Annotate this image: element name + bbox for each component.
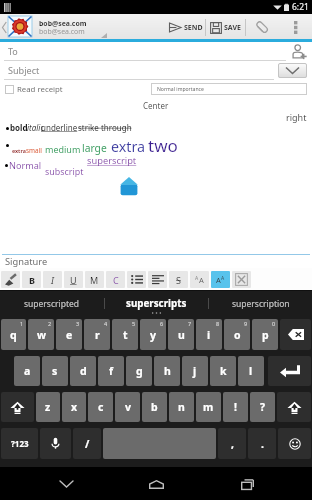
button[interactable]: y — [140, 319, 166, 350]
staticText: A — [199, 275, 204, 285]
button[interactable]: v — [115, 392, 140, 422]
button[interactable]: M — [85, 271, 104, 288]
button[interactable]: a — [14, 356, 40, 386]
button[interactable]: i — [196, 319, 222, 350]
button[interactable]: t — [112, 319, 138, 350]
button[interactable]: emoji — [278, 428, 311, 459]
staticText: c — [98, 400, 104, 414]
staticText: b — [151, 400, 158, 414]
button[interactable]: s — [42, 356, 68, 386]
staticText: q — [10, 328, 17, 342]
staticText: superscript — [87, 154, 137, 167]
button[interactable]: d — [70, 356, 96, 386]
button[interactable]: j — [182, 356, 208, 386]
button[interactable]: Normal importance — [151, 83, 307, 95]
staticText: x — [71, 400, 78, 414]
staticText: 6:21 — [292, 1, 309, 13]
staticText: a — [24, 364, 31, 378]
button[interactable]: / — [73, 428, 101, 459]
button[interactable]: Read receipt — [3, 82, 63, 96]
button[interactable]: shift — [1, 392, 34, 422]
button[interactable]: g — [126, 356, 152, 386]
button[interactable]: I — [43, 271, 62, 288]
staticText: extra — [12, 147, 26, 154]
staticText: k — [220, 364, 227, 378]
button[interactable]: Add contact — [291, 44, 307, 59]
staticText: 7 — [188, 320, 192, 327]
button[interactable]: More options — [288, 16, 304, 38]
button[interactable]: b — [142, 392, 167, 422]
button[interactable]: o — [224, 319, 250, 350]
staticText: Signature — [5, 255, 48, 268]
button[interactable]: w — [28, 319, 54, 350]
button[interactable]: ?123 — [1, 428, 38, 459]
button[interactable]: h — [154, 356, 180, 386]
staticText: B — [29, 274, 35, 286]
button[interactable]: mic — [40, 428, 71, 459]
button[interactable]: enter — [268, 356, 311, 386]
button[interactable]: Back — [41, 469, 91, 499]
button[interactable]: Account — [8, 16, 32, 37]
button[interactable]: U — [64, 271, 83, 288]
button[interactable]: list — [127, 271, 146, 288]
button[interactable]: k — [210, 356, 236, 386]
button[interactable]: z — [36, 392, 60, 422]
button[interactable]: sup — [211, 271, 230, 288]
staticText: superscripted — [24, 298, 80, 310]
staticText: o — [234, 328, 241, 342]
staticText: v — [125, 400, 131, 414]
button[interactable]: SEND — [168, 18, 203, 37]
button[interactable]: B — [22, 271, 41, 288]
button[interactable]: Recents — [222, 469, 272, 499]
staticText: t — [123, 328, 128, 342]
staticText: U — [70, 274, 77, 286]
button[interactable]: r — [84, 319, 110, 350]
staticText: e — [66, 328, 73, 342]
button[interactable]: brush — [1, 271, 20, 288]
staticText: u — [178, 328, 185, 342]
button[interactable]: q — [1, 319, 26, 350]
button[interactable]: align — [148, 271, 167, 288]
button[interactable]: Show more fields — [278, 63, 307, 78]
button[interactable]: c — [88, 392, 113, 422]
staticText: f — [109, 364, 114, 378]
button[interactable]: clear — [232, 271, 251, 288]
button[interactable]: x — [62, 392, 86, 422]
button[interactable]: superscripts — [105, 291, 208, 316]
button[interactable]: f — [98, 356, 124, 386]
button[interactable]: Back — [2, 22, 7, 33]
button[interactable]: Home — [131, 469, 181, 499]
button[interactable]: C — [106, 271, 125, 288]
staticText: p — [262, 328, 269, 342]
button[interactable]: , — [218, 428, 246, 459]
staticText: A — [221, 275, 225, 282]
staticText: underline — [41, 122, 78, 133]
button[interactable]: ! — [223, 392, 248, 422]
staticText: S — [176, 274, 181, 286]
staticText: ? — [260, 400, 266, 414]
staticText: / — [85, 437, 90, 451]
button[interactable]: n — [169, 392, 194, 422]
button[interactable]: sub — [190, 271, 209, 288]
button[interactable]: bksp — [280, 319, 311, 350]
button[interactable]: superscription — [209, 291, 312, 316]
button[interactable]: shift — [277, 392, 311, 422]
staticText: 9 — [244, 320, 248, 327]
staticText: 4 — [104, 320, 108, 327]
staticText: SEND — [184, 23, 203, 33]
button[interactable]: S — [169, 271, 188, 288]
button[interactable]: m — [196, 392, 221, 422]
staticText: j — [193, 364, 197, 378]
staticText: ?123 — [11, 438, 29, 449]
button[interactable]: l — [238, 356, 264, 386]
button[interactable]: superscripted — [0, 291, 104, 316]
button[interactable]: u — [168, 319, 194, 350]
button[interactable]: Attach — [254, 19, 270, 35]
button[interactable]: . — [248, 428, 276, 459]
button[interactable]: p — [252, 319, 278, 350]
button[interactable]: e — [56, 319, 82, 350]
button[interactable]: ? — [250, 392, 275, 422]
staticText: right — [286, 111, 307, 123]
button[interactable]: SAVE — [210, 18, 241, 37]
